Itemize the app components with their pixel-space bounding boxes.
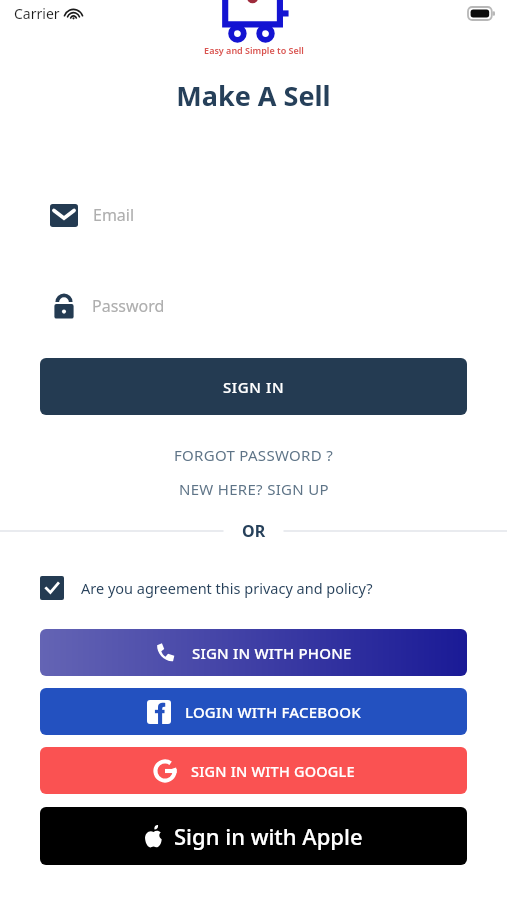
staticText: Easy and Simple to Sell <box>204 44 304 56</box>
other: Email <box>50 204 78 227</box>
staticText: Email <box>93 204 135 226</box>
staticText: LOGIN WITH FACEBOOK <box>185 702 361 722</box>
staticText: Are you agreement this privacy and polic… <box>81 578 373 598</box>
staticText: Make A Sell <box>176 77 331 114</box>
other: Login with Facebook <box>147 700 171 724</box>
staticText: Password <box>92 295 165 317</box>
staticText: Sign in with Apple <box>174 821 363 851</box>
button[interactable]: Are you agreement this privacy and polic… <box>40 572 467 604</box>
staticText: NEW HERE? SIGN UP <box>179 479 329 499</box>
other: Sign in with phone <box>155 642 176 663</box>
button[interactable]: NEW HERE? SIGN UP <box>0 476 507 502</box>
staticText: SIGN IN WITH PHONE <box>192 643 352 663</box>
button[interactable]: Email <box>40 196 467 234</box>
staticText: OR <box>242 520 266 542</box>
other: Password <box>52 292 76 320</box>
other: Sign in with Google <box>153 759 177 783</box>
button[interactable]: Sign in with Apple <box>40 807 467 865</box>
staticText: FORGOT PASSWORD ? <box>174 445 333 465</box>
staticText: Carrier <box>14 4 60 23</box>
button[interactable]: Sign in with phone <box>40 629 467 676</box>
other: Sign in with Apple <box>144 825 163 848</box>
staticText: SIGN IN WITH GOOGLE <box>191 761 355 781</box>
button[interactable]: SIGN IN <box>40 358 467 415</box>
button[interactable]: Password <box>40 287 467 325</box>
staticText: SIGN IN <box>223 377 285 397</box>
button[interactable]: FORGOT PASSWORD ? <box>0 442 507 468</box>
button[interactable]: Sign in with Google <box>40 747 467 794</box>
button[interactable]: Login with Facebook <box>40 688 467 735</box>
